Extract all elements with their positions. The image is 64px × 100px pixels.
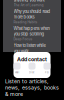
staticText: you walk — [13, 49, 28, 54]
staticText: Audio Guide — [13, 54, 32, 58]
staticText: Listen to articles, news, essays, books … — [5, 78, 59, 97]
staticText: Deep Focus — [13, 37, 32, 41]
staticText: more books — [13, 14, 34, 19]
staticText: Disc — [29, 71, 35, 74]
button[interactable]: FB — [43, 63, 50, 74]
staticText: Why you should read — [13, 9, 50, 14]
staticText: Add contact — [17, 56, 47, 63]
button[interactable]: Disc — [28, 63, 35, 74]
staticText: What happens when — [13, 26, 49, 31]
staticText: Mail — [14, 71, 19, 74]
staticText: How to listen while — [13, 43, 45, 48]
staticText: anything you want — [13, 0, 44, 2]
staticText: FB — [45, 71, 49, 74]
staticText: The Art of Learning — [13, 3, 43, 7]
button[interactable]: Mail — [13, 63, 20, 74]
staticText: Reading Habits — [13, 20, 37, 24]
staticText: you stop scrolling — [13, 32, 44, 37]
